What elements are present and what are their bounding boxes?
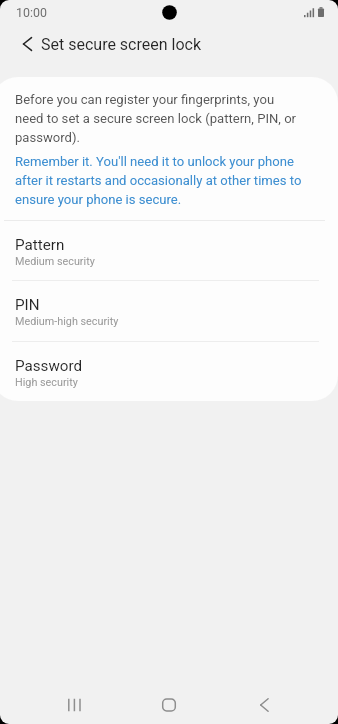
- button[interactable]: Home: [145, 681, 193, 724]
- staticText: High security: [15, 376, 78, 389]
- button[interactable]: PIN: [0, 281, 338, 342]
- staticText: Password: [15, 358, 83, 375]
- button[interactable]: Back: [240, 681, 288, 724]
- staticText: 10:00: [16, 5, 47, 20]
- staticText: Before you can register your fingerprint…: [15, 89, 305, 146]
- staticText: Medium security: [15, 255, 95, 268]
- staticText: Set secure screen lock: [41, 36, 202, 54]
- button[interactable]: Password: [0, 342, 338, 401]
- staticText: PIN: [15, 297, 40, 314]
- button[interactable]: Pattern: [0, 221, 338, 281]
- staticText: Remember it. You'll need it to unlock yo…: [15, 151, 305, 208]
- staticText: Pattern: [15, 237, 65, 254]
- button[interactable]: Recent apps: [51, 681, 99, 724]
- staticText: Medium-high security: [15, 315, 119, 328]
- button[interactable]: Navigate up: [6, 20, 47, 68]
